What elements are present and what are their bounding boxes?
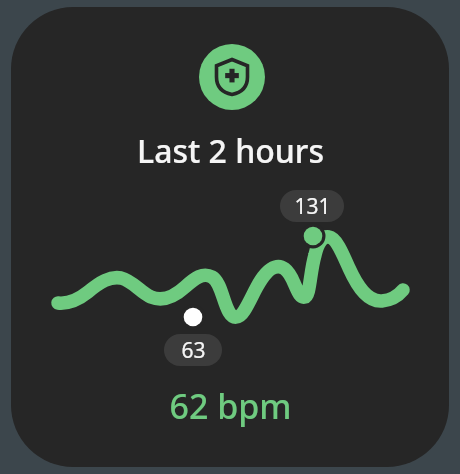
staticText: Last 2 hours	[137, 129, 324, 173]
staticText: 62 bpm	[169, 383, 292, 429]
button[interactable]: Heart rate tile, last 2 hours, 62 bpm	[0, 0, 460, 474]
staticText: 63	[181, 336, 206, 365]
staticText: 131	[294, 192, 331, 221]
